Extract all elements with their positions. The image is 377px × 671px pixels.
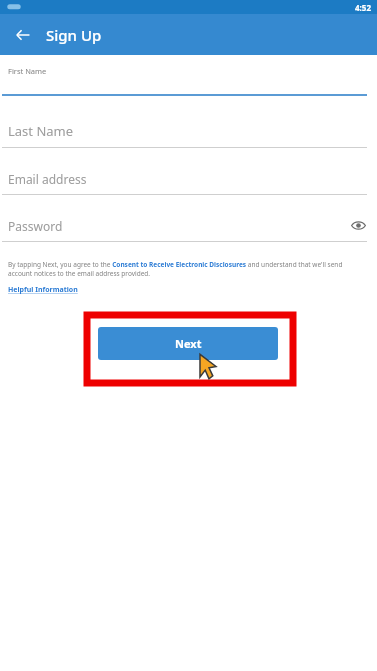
button[interactable]: Helpful Information [8, 285, 78, 295]
staticText: Next [175, 336, 202, 351]
button[interactable]: Last Name [0, 122, 377, 148]
staticText: First Name [8, 66, 47, 76]
button[interactable]: First Name [0, 66, 377, 96]
staticText: Helpful Information [8, 285, 78, 295]
button[interactable]: Next [98, 327, 278, 360]
button[interactable]: Email address [0, 171, 377, 195]
staticText: Password [8, 218, 63, 234]
button[interactable]: Show password [347, 214, 369, 236]
staticText: By tapping Next, you agree to the Consen… [8, 260, 365, 278]
button[interactable]: Password [0, 218, 377, 242]
staticText: Last Name [8, 122, 74, 140]
button[interactable]: Back [6, 18, 40, 52]
staticText: Sign Up [46, 25, 102, 45]
staticText: Email address [8, 171, 87, 187]
staticText: 4:52 [355, 2, 371, 13]
